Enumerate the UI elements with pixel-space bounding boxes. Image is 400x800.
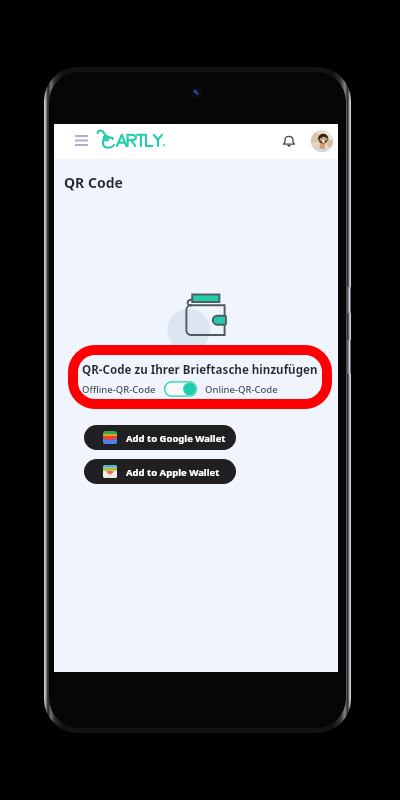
button[interactable]: Notifications [277, 128, 301, 152]
button[interactable]: QR code mode [164, 381, 197, 397]
staticText: QR-Code zu Ihrer Brieftasche hinzufügen [82, 362, 318, 378]
staticText: Add to Apple Wallet [126, 466, 220, 479]
button[interactable]: Profile [311, 130, 333, 152]
staticText: Online-QR-Code [205, 383, 278, 396]
staticText: Add to Google Wallet [126, 432, 226, 445]
button[interactable]: Add to Google Wallet [84, 425, 236, 450]
staticText: Offline-QR-Code [82, 383, 156, 396]
staticText: QR Code [64, 173, 123, 192]
button[interactable]: Add to Apple Wallet [84, 459, 236, 484]
button[interactable]: Menu [68, 127, 94, 153]
